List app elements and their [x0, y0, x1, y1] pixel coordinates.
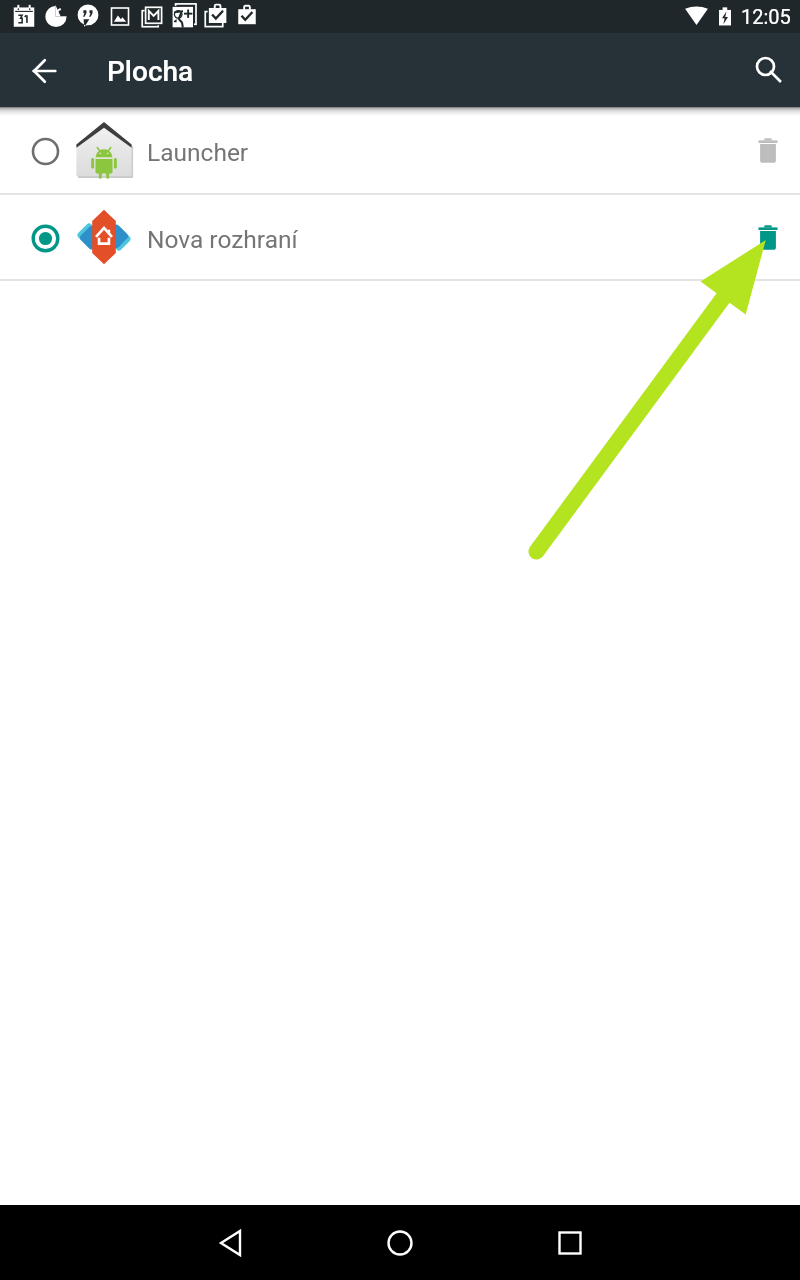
- staticText: 12:05: [741, 5, 791, 28]
- button[interactable]: Delete: [736, 119, 800, 183]
- button[interactable]: Nova rozhraní: [0, 195, 800, 281]
- button[interactable]: Recent apps: [522, 1205, 618, 1280]
- button[interactable]: Navigate up: [21, 47, 69, 95]
- button[interactable]: Search: [745, 46, 793, 94]
- button[interactable]: Delete: [736, 206, 800, 270]
- button[interactable]: Home: [352, 1205, 448, 1280]
- staticText: Nova rozhraní: [147, 225, 298, 254]
- staticText: Plocha: [107, 55, 194, 88]
- staticText: Launcher: [147, 138, 249, 167]
- button[interactable]: Launcher: [0, 107, 800, 195]
- button[interactable]: Back: [183, 1205, 279, 1280]
